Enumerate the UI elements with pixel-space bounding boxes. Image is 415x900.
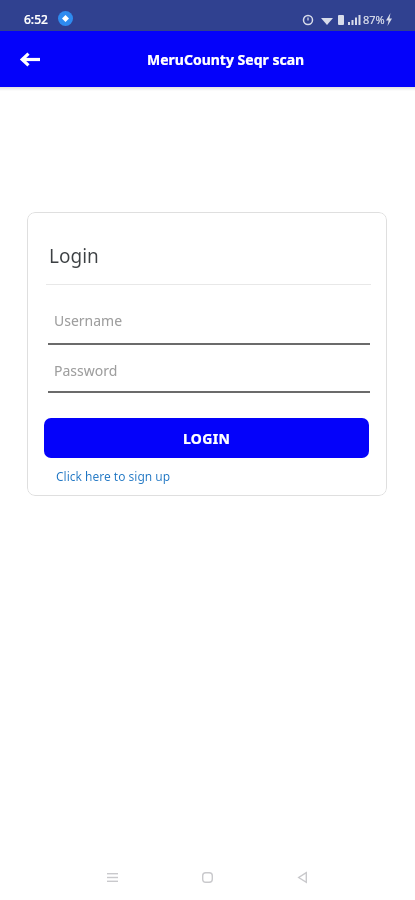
staticText: MeruCounty Seqr scan: [147, 50, 305, 69]
button[interactable]: [278, 854, 326, 900]
button[interactable]: Username: [46, 304, 371, 349]
button[interactable]: [8, 36, 54, 82]
staticText: 87%: [363, 12, 385, 27]
staticText: LOGIN: [183, 429, 231, 448]
button[interactable]: Password: [46, 354, 371, 399]
button[interactable]: LOGIN: [44, 418, 369, 458]
staticText: Login: [49, 243, 99, 269]
staticText: 6:52: [24, 11, 48, 27]
staticText: Username: [54, 311, 123, 330]
staticText: Password: [54, 361, 118, 380]
button[interactable]: Click here to sign up: [56, 468, 171, 484]
button[interactable]: [88, 854, 136, 900]
button[interactable]: [183, 854, 231, 900]
